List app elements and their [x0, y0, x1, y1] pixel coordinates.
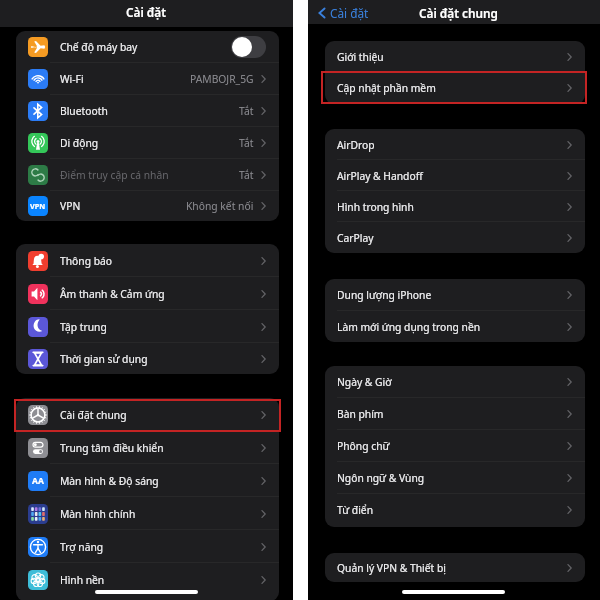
button[interactable]: Từ điển	[325, 494, 585, 526]
staticText: Điểm truy cập cá nhân	[60, 168, 169, 182]
button[interactable]: Thông báo	[16, 244, 279, 277]
button[interactable]: Giới thiệu	[325, 41, 585, 72]
button[interactable]: Tập trung	[16, 310, 279, 343]
button[interactable]: Ngày & Giờ	[325, 366, 585, 398]
staticText: AA	[32, 475, 44, 487]
staticText: Quản lý VPN & Thiết bị	[337, 561, 446, 575]
button[interactable]: Wi-Fi	[16, 63, 279, 95]
button[interactable]: Phông chữ	[325, 430, 585, 462]
staticText: AirPlay & Handoff	[337, 169, 423, 183]
button[interactable]: Điểm truy cập cá nhân	[16, 159, 279, 191]
button[interactable]: Bluetooth	[16, 95, 279, 127]
button[interactable]: Âm thanh & Cảm ứng	[16, 277, 279, 310]
button[interactable]: Cập nhật phần mềm	[325, 72, 585, 103]
button[interactable]: AirPlay & Handoff	[325, 160, 585, 191]
staticText: Chế độ máy bay	[60, 40, 138, 54]
staticText: Tập trung	[60, 320, 107, 334]
button[interactable]: Back	[318, 5, 369, 21]
staticText: Thông báo	[60, 254, 113, 268]
staticText: Màn hình chính	[60, 507, 136, 521]
staticText: Bàn phím	[337, 407, 384, 421]
staticText: Phông chữ	[337, 439, 390, 453]
button[interactable]: CarPlay	[325, 222, 585, 253]
button[interactable]: Airplane mode toggle	[231, 36, 266, 58]
staticText: PAMBOJR_5G	[190, 72, 254, 86]
staticText: Bluetooth	[60, 104, 108, 118]
staticText: Hình nền	[60, 573, 105, 587]
staticText: VPN	[30, 201, 46, 211]
button[interactable]: Cài đặt chung	[16, 398, 279, 431]
button[interactable]: Màn hình chính	[16, 497, 279, 530]
staticText: Trợ năng	[60, 540, 104, 554]
staticText: Cài đặt chung	[419, 5, 498, 21]
staticText: Wi-Fi	[60, 72, 84, 86]
staticText: Cài đặt chung	[60, 408, 127, 422]
staticText: Màn hình & Độ sáng	[60, 474, 159, 488]
staticText: Cài đặt	[330, 5, 369, 21]
staticText: Ngôn ngữ & Vùng	[337, 471, 425, 485]
button[interactable]: Chế độ máy bay	[16, 31, 279, 63]
staticText: Cập nhật phần mềm	[337, 81, 436, 95]
staticText: VPN	[60, 199, 81, 213]
button[interactable]: Thời gian sử dụng	[16, 343, 279, 374]
staticText: AirDrop	[337, 138, 375, 152]
staticText: Không kết nối	[186, 199, 254, 213]
button[interactable]: AirDrop	[325, 129, 585, 160]
button[interactable]: VPN	[16, 191, 279, 221]
staticText: Âm thanh & Cảm ứng	[60, 287, 165, 301]
staticText: Tắt	[239, 168, 254, 182]
staticText: Thời gian sử dụng	[60, 352, 148, 366]
staticText: Làm mới ứng dụng trong nền	[337, 320, 481, 334]
staticText: Tắt	[239, 136, 254, 150]
button[interactable]: Hình nền	[16, 563, 279, 596]
staticText: Tắt	[239, 104, 254, 118]
staticText: Hình trong hình	[337, 200, 414, 214]
button[interactable]: Làm mới ứng dụng trong nền	[325, 311, 585, 342]
button[interactable]: AA	[16, 464, 279, 497]
button[interactable]: Bàn phím	[325, 398, 585, 430]
staticText: Từ điển	[337, 503, 374, 517]
button[interactable]: Ngôn ngữ & Vùng	[325, 462, 585, 494]
other: Back	[318, 7, 326, 19]
button[interactable]: Di động	[16, 127, 279, 159]
button[interactable]: Quản lý VPN & Thiết bị	[325, 553, 585, 582]
button[interactable]: Hình trong hình	[325, 191, 585, 222]
button[interactable]: Trung tâm điều khiển	[16, 431, 279, 464]
staticText: Trung tâm điều khiển	[60, 441, 164, 455]
staticText: Cài đặt	[126, 4, 167, 20]
button[interactable]: Trợ năng	[16, 530, 279, 563]
staticText: Dung lượng iPhone	[337, 288, 432, 302]
button[interactable]: Dung lượng iPhone	[325, 279, 585, 311]
staticText: Di động	[60, 136, 99, 150]
staticText: CarPlay	[337, 231, 374, 245]
staticText: Giới thiệu	[337, 50, 384, 64]
staticText: Ngày & Giờ	[337, 375, 392, 389]
